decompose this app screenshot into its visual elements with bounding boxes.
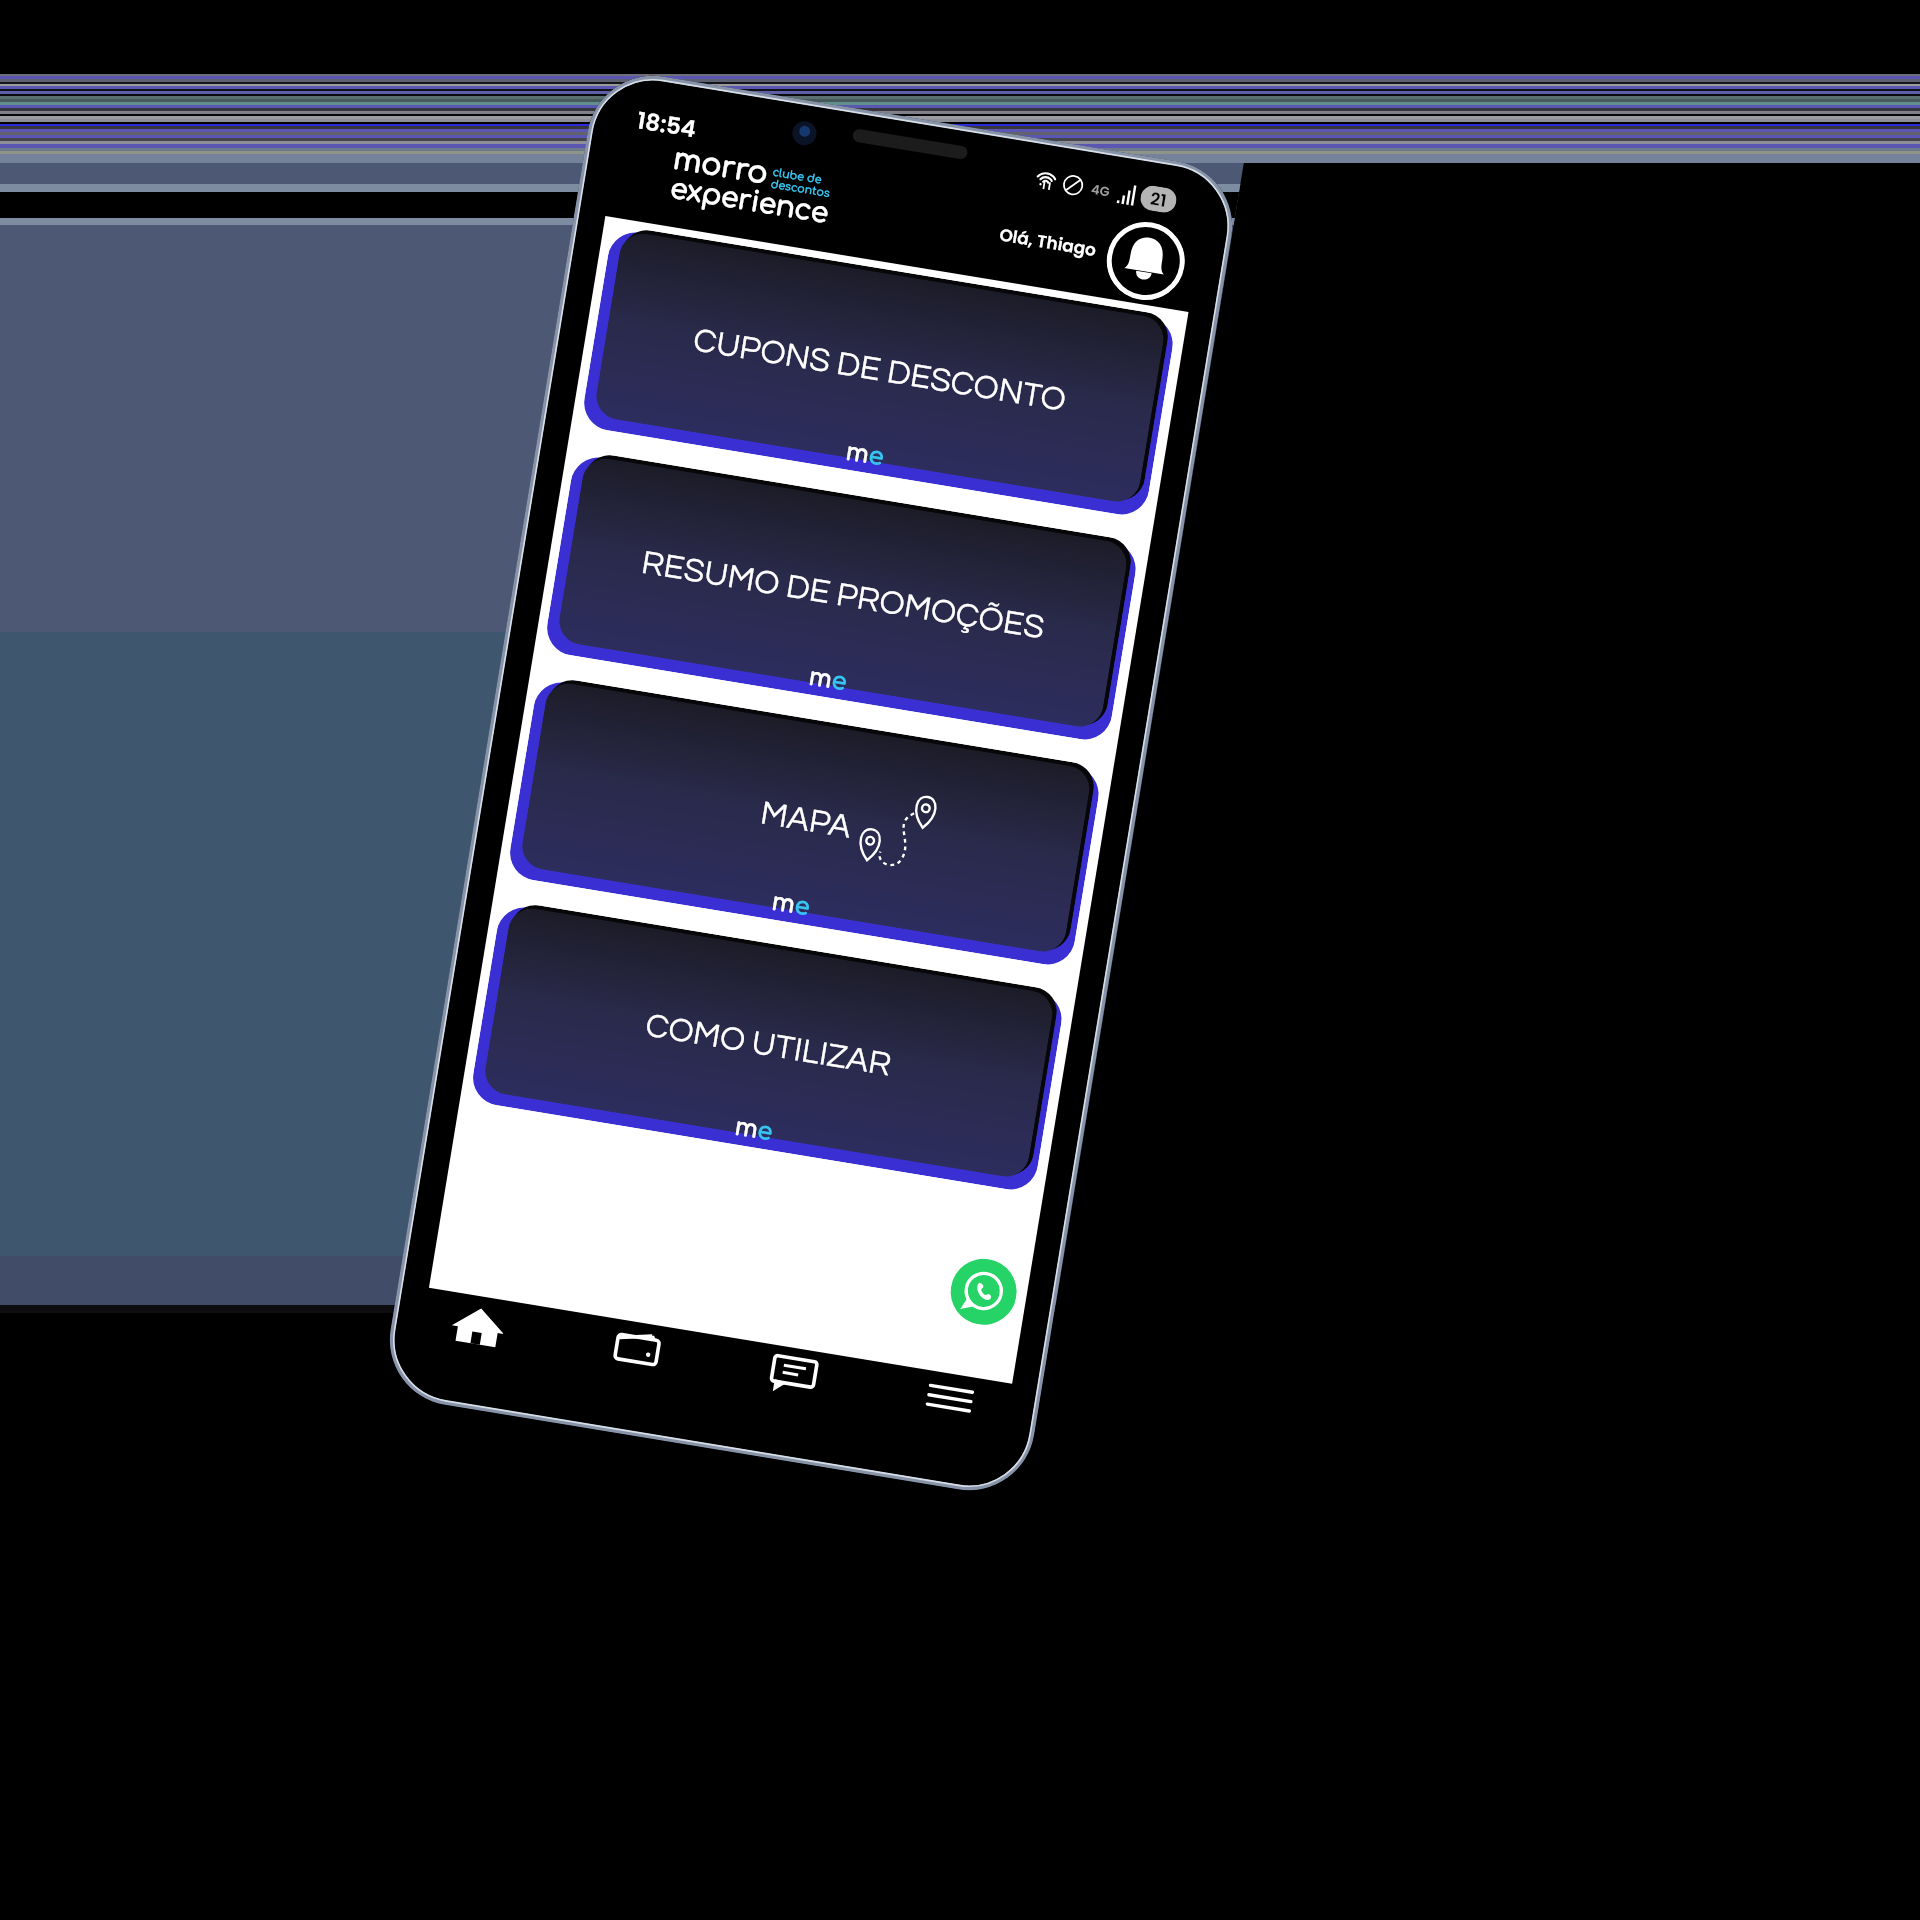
staticText: clube de	[772, 166, 823, 186]
staticText: m	[844, 438, 871, 469]
staticText: CUPONS DE DESCONTO	[690, 323, 1068, 419]
staticText: MAPA	[757, 796, 854, 846]
button[interactable]	[506, 678, 1103, 969]
button[interactable]	[469, 903, 1066, 1194]
staticText: RESUMO DE PROMOÇÕES	[639, 546, 1047, 647]
staticText: m	[733, 1113, 760, 1144]
button[interactable]: Notificações	[1100, 216, 1191, 306]
staticText: m	[807, 663, 834, 694]
button[interactable]	[580, 228, 1177, 519]
staticText: e	[793, 892, 812, 921]
staticText: morro	[671, 143, 771, 191]
staticText: experience	[668, 172, 831, 229]
staticText: e	[867, 442, 886, 471]
staticText: 4G	[1090, 180, 1111, 201]
button[interactable]	[543, 453, 1140, 744]
staticText: m	[770, 888, 797, 919]
button[interactable]: Carteira	[606, 1315, 670, 1380]
staticText: e	[756, 1117, 775, 1146]
button[interactable]: WhatsApp	[946, 1254, 1021, 1330]
button[interactable]: Menu	[918, 1367, 982, 1431]
button[interactable]: Início	[446, 1293, 511, 1357]
staticText: COMO UTILIZAR	[642, 1008, 894, 1083]
staticText: 21	[1148, 186, 1168, 213]
staticText: descontos	[770, 178, 831, 199]
staticText: Olá, Thiago	[998, 222, 1098, 262]
staticText: e	[830, 667, 849, 696]
button[interactable]: Mensagens	[762, 1341, 826, 1405]
staticText: 18:54	[635, 104, 699, 145]
